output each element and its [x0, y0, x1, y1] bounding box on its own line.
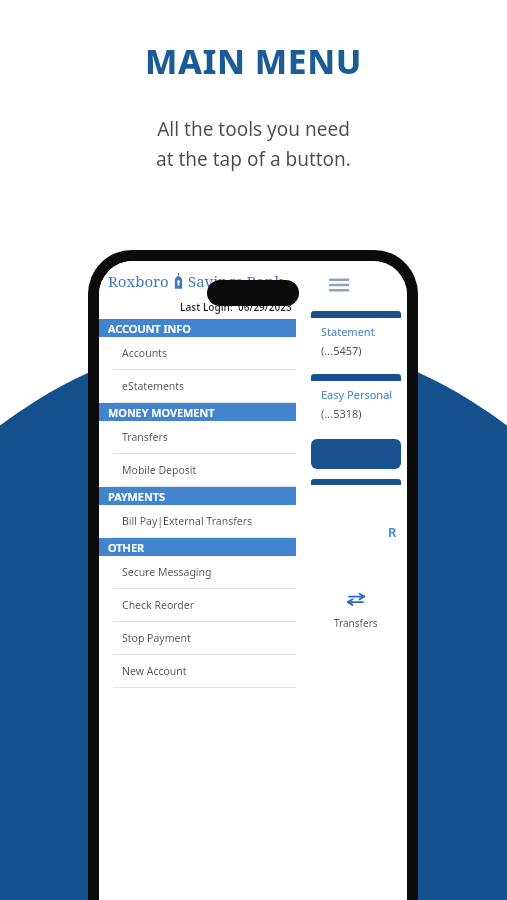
staticText: Mobile Deposit [122, 463, 197, 477]
staticText: OTHER [108, 540, 145, 555]
staticText: Transfers [334, 616, 378, 630]
staticText: MONEY MOVEMENT [108, 405, 215, 420]
button[interactable]: ACCOUNT INFO [99, 319, 296, 337]
staticText: Secure Messaging [122, 565, 212, 579]
staticText: Accounts [122, 346, 167, 360]
staticText: PAYMENTS [108, 489, 165, 504]
staticText: Bill Pay|External Transfers [122, 514, 253, 528]
staticText: R [388, 523, 397, 541]
staticText: ACCOUNT INFO [108, 321, 191, 336]
button[interactable]: Easy Personal Checking [311, 374, 401, 429]
button[interactable]: Bill Pay|External Transfers [99, 505, 296, 538]
staticText: eStatements [122, 379, 185, 393]
button[interactable]: Mobile Deposit [99, 454, 296, 487]
staticText: (...5457) [321, 343, 362, 358]
staticText: New Account [122, 664, 187, 678]
staticText: MAIN MENU [145, 38, 362, 84]
button[interactable]: Open menu [323, 269, 355, 301]
button[interactable]: Statement Savings [311, 311, 401, 366]
button[interactable]: Secure Messaging [99, 556, 296, 589]
staticText: Last Login: 06/29/2023 [180, 300, 292, 314]
staticText: at the tap of a button. [156, 146, 351, 172]
button[interactable]: Accounts [99, 337, 296, 370]
staticText: Transfers [122, 430, 168, 444]
button[interactable]: OTHER [99, 538, 296, 556]
button[interactable]: Stop Payment [99, 622, 296, 655]
staticText: (...5318) [321, 406, 362, 421]
button[interactable]: eStatements [99, 370, 296, 403]
staticText: Statement Savings [321, 324, 401, 339]
button[interactable]: Transfers [99, 421, 296, 454]
staticText: All the tools you need [157, 116, 350, 142]
staticText: Easy Personal Checking [321, 387, 401, 402]
button[interactable]: R [311, 479, 401, 654]
staticText: Roxboro [108, 271, 169, 291]
button[interactable] [311, 439, 401, 469]
staticText: Check Reorder [122, 598, 195, 612]
staticText: Savings Bank [188, 271, 284, 291]
button[interactable]: New Account [99, 655, 296, 688]
button[interactable]: Check Reorder [99, 589, 296, 622]
button[interactable]: MONEY MOVEMENT [99, 403, 296, 421]
staticText: Stop Payment [122, 631, 191, 645]
button[interactable]: PAYMENTS [99, 487, 296, 505]
